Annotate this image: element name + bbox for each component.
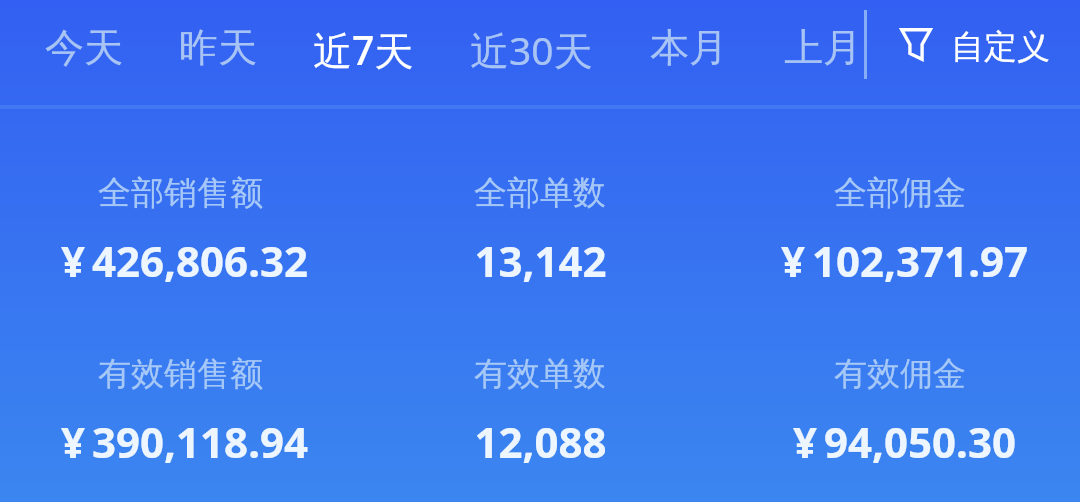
- button[interactable]: 近7天: [299, 9, 428, 90]
- button[interactable]: 有效佣金: [720, 353, 1080, 470]
- staticText: ¥ 426,806.32: [61, 232, 308, 289]
- button[interactable]: 近30天: [456, 9, 607, 90]
- staticText: 13,142: [474, 232, 607, 289]
- staticText: 上月: [784, 23, 862, 72]
- staticText: 有效单数: [474, 353, 606, 395]
- button[interactable]: Filter: [878, 12, 1064, 76]
- staticText: ¥ 102,371.97: [781, 232, 1028, 289]
- button[interactable]: 上月: [770, 9, 876, 86]
- staticText: 有效佣金: [834, 353, 966, 395]
- button[interactable]: 今天: [31, 9, 137, 86]
- button[interactable]: 全部佣金: [720, 172, 1080, 289]
- staticText: 本月: [650, 23, 728, 72]
- staticText: 12,088: [474, 413, 607, 470]
- button[interactable]: 全部销售额: [0, 172, 360, 289]
- staticText: 今天: [45, 23, 123, 72]
- staticText: 全部销售额: [98, 172, 263, 214]
- staticText: 全部单数: [474, 172, 606, 214]
- staticText: 自定义: [951, 26, 1050, 68]
- other: Filter: [900, 28, 932, 61]
- button[interactable]: 有效销售额: [0, 353, 360, 470]
- staticText: 近7天: [313, 23, 414, 76]
- staticText: 近30天: [470, 23, 593, 76]
- staticText: ¥ 94,050.30: [793, 413, 1016, 470]
- button[interactable]: 本月: [636, 9, 742, 86]
- staticText: 全部佣金: [834, 172, 966, 214]
- button[interactable]: 昨天: [165, 9, 271, 86]
- staticText: 有效销售额: [98, 353, 263, 395]
- staticText: ¥ 390,118.94: [61, 413, 308, 470]
- button[interactable]: 全部单数: [360, 172, 720, 289]
- button[interactable]: 有效单数: [360, 353, 720, 470]
- staticText: 昨天: [179, 23, 257, 72]
